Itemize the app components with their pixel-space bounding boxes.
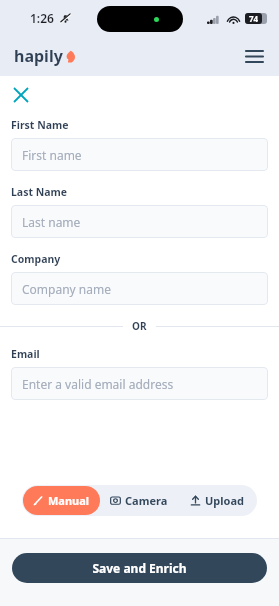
staticText: Company name — [22, 281, 111, 297]
staticText: 74 — [249, 13, 259, 24]
button[interactable]: Save and Enrich — [12, 553, 267, 583]
staticText: hapily — [14, 45, 63, 67]
button[interactable]: Company name — [11, 272, 268, 305]
staticText: Upload — [205, 493, 244, 508]
staticText: Last Name — [11, 185, 68, 199]
button[interactable]: Menu — [239, 41, 269, 71]
staticText: Last name — [22, 214, 81, 230]
staticText: 1:26 — [30, 10, 54, 26]
button[interactable]: Enter a valid email address — [11, 367, 268, 400]
staticText: Save and Enrich — [92, 560, 187, 576]
button[interactable]: Upload — [178, 486, 256, 515]
staticText: Camera — [125, 493, 168, 508]
staticText: Email — [11, 347, 40, 361]
button[interactable]: Manual — [23, 486, 100, 515]
button[interactable]: Last name — [11, 205, 268, 238]
button[interactable]: First name — [11, 138, 268, 171]
staticText: Manual — [48, 493, 90, 508]
staticText: OR — [132, 319, 147, 333]
button[interactable]: Camera — [100, 486, 178, 515]
staticText: First name — [22, 147, 82, 163]
staticText: Enter a valid email address — [22, 376, 174, 392]
button[interactable]: Close — [6, 80, 36, 110]
staticText: Company — [11, 252, 61, 266]
staticText: First Name — [11, 118, 69, 132]
